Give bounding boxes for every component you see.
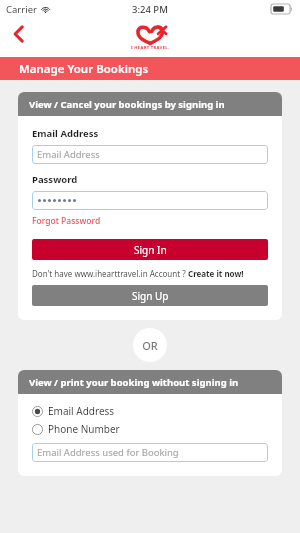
staticText: Phone Number — [48, 422, 120, 436]
staticText: I HEART TRAVEL. — [131, 45, 170, 51]
staticText: View / Cancel your bookings by signing i… — [29, 98, 225, 111]
staticText: Password — [32, 173, 78, 186]
staticText: OR — [142, 338, 158, 353]
button[interactable]: Forgot Password — [32, 215, 101, 227]
button[interactable]: Sign In — [32, 239, 268, 260]
staticText: Email Address — [32, 127, 99, 140]
staticText: Email Address — [48, 404, 115, 418]
button[interactable]: Email Address used for Booking — [32, 443, 268, 462]
staticText: Carrier — [6, 3, 37, 16]
staticText: Don't have www.ihearttravel.in Account ? — [32, 268, 188, 279]
staticText: 3:24 PM — [132, 3, 168, 16]
staticText: Sign Up — [132, 289, 169, 303]
button[interactable]: Back — [4, 20, 32, 48]
staticText: Sign In — [134, 243, 167, 257]
button[interactable] — [32, 191, 268, 210]
staticText: Manage Your Bookings — [19, 61, 149, 77]
staticText: Email Address used for Booking — [37, 446, 179, 459]
staticText: Create it now! — [188, 268, 244, 279]
button[interactable]: Phone Number — [32, 421, 120, 437]
button[interactable]: Sign Up — [32, 285, 268, 306]
staticText: View / print your booking without signin… — [29, 376, 239, 389]
button[interactable]: Email Address — [32, 403, 115, 419]
staticText: Forgot Password — [32, 215, 101, 227]
button[interactable]: Email Address — [32, 145, 268, 164]
staticText: Email Address — [37, 148, 100, 161]
button[interactable]: Create it now! — [188, 268, 244, 279]
